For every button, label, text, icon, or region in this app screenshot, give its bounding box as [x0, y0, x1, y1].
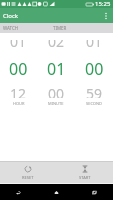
staticText: MINUTE	[48, 101, 64, 106]
staticText: 01	[10, 40, 27, 51]
staticText: 01	[86, 40, 103, 51]
staticText: SECOND	[86, 101, 102, 106]
staticText: 00	[85, 58, 104, 80]
button[interactable]: Recents	[75, 184, 113, 200]
staticText: 12	[10, 84, 27, 98]
staticText: TIMER	[53, 25, 67, 31]
staticText: 15:25	[95, 0, 111, 8]
staticText: WATCH	[3, 25, 19, 31]
staticText: Clock	[3, 12, 19, 20]
button[interactable]: START	[56, 162, 113, 183]
button[interactable]: More options	[99, 8, 113, 23]
staticText: 02	[48, 40, 65, 51]
button[interactable]: 02	[37, 40, 75, 112]
staticText: 00	[48, 84, 65, 98]
staticText: RESET	[22, 175, 34, 180]
staticText: 59	[86, 84, 103, 98]
staticText: HOUR	[13, 101, 25, 106]
button[interactable]: WATCH	[0, 23, 21, 33]
button[interactable]: Back	[0, 184, 37, 200]
button[interactable]: RESET	[0, 162, 56, 183]
button[interactable]: 01	[0, 40, 37, 112]
staticText: 01	[47, 58, 66, 80]
staticText: START	[79, 175, 91, 180]
button[interactable]: Home	[37, 184, 75, 200]
button[interactable]: 01	[75, 40, 113, 112]
staticText: 00	[9, 58, 28, 80]
button[interactable]: TIMER	[49, 23, 71, 33]
